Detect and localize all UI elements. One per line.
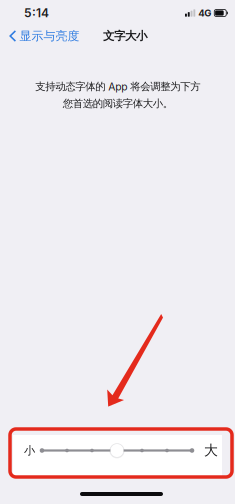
staticText: 文字大小 <box>103 29 147 43</box>
staticText: 5:14 <box>24 6 49 20</box>
staticText: 显示与亮度 <box>20 28 80 43</box>
staticText: 大 <box>204 442 218 459</box>
staticText: 支持动态字体的 App 将会调整为下方 <box>35 80 200 93</box>
staticText: 4G <box>198 7 211 19</box>
button[interactable]: 显示与亮度 <box>0 25 84 46</box>
staticText: 小 <box>24 443 35 457</box>
staticText: 您首选的阅读字体大小。 <box>62 97 172 110</box>
button[interactable]: 小 <box>13 435 222 477</box>
